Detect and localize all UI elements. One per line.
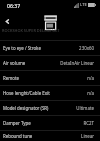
button[interactable]: Remote	[0, 70, 100, 85]
staticText: 06:37	[7, 2, 21, 9]
button[interactable]: Rebound tune	[0, 130, 100, 141]
staticText: Remote	[3, 75, 20, 81]
button[interactable]: Eye to eye / Stroke	[0, 40, 100, 55]
staticText: Damper Type	[3, 120, 31, 126]
staticText: Model designator (SR)	[3, 105, 49, 111]
staticText: Eye to eye / Stroke	[3, 45, 41, 51]
staticText: 230x60	[79, 45, 94, 51]
staticText: Linear	[81, 133, 94, 139]
staticText: Ultimate	[76, 105, 94, 111]
staticText: ROCKSHOX SUPER DELUXE ULT	[2, 28, 60, 33]
staticText: LTE	[80, 2, 87, 8]
button[interactable]: Back	[0, 14, 14, 28]
staticText: Air volume	[3, 60, 26, 66]
button[interactable]: Air volume	[0, 55, 100, 70]
staticText: n/a	[87, 75, 94, 81]
button[interactable]: Model designator (SR)	[0, 100, 100, 115]
staticText: n/a	[87, 90, 94, 96]
staticText: Hose lenght/Cable Exit	[3, 90, 50, 96]
staticText: DetaInAir Linear	[60, 60, 94, 66]
staticText: Rebound tune	[3, 133, 33, 139]
button[interactable]: Hose lenght/Cable Exit	[0, 85, 100, 100]
button[interactable]: Damper Type	[0, 115, 100, 130]
staticText: RC2T	[83, 120, 94, 126]
